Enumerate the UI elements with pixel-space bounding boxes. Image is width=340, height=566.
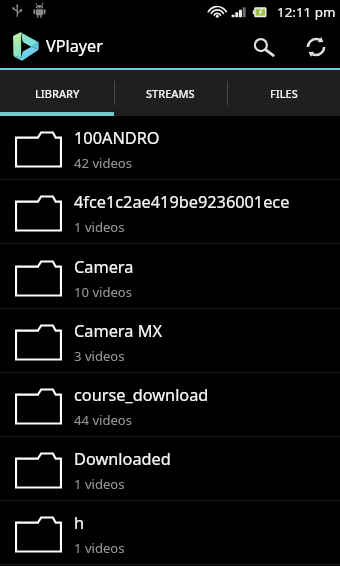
staticText: 3 videos bbox=[74, 347, 125, 365]
button[interactable]: course_download bbox=[0, 373, 340, 437]
staticText: 1 videos bbox=[74, 475, 125, 493]
staticText: VPlayer bbox=[46, 35, 103, 57]
button[interactable]: h bbox=[0, 501, 340, 565]
button[interactable]: 4fce1c2ae419be9236001ece bbox=[0, 180, 340, 244]
button[interactable]: LIBRARY bbox=[0, 70, 114, 116]
staticText: 1 videos bbox=[74, 539, 125, 557]
button[interactable]: Camera MX bbox=[0, 309, 340, 373]
staticText: LIBRARY bbox=[35, 86, 80, 101]
staticText: 44 videos bbox=[74, 411, 133, 429]
staticText: h bbox=[74, 512, 85, 534]
button[interactable]: STREAMS bbox=[114, 70, 227, 116]
staticText: Downloaded bbox=[74, 448, 171, 470]
button[interactable]: Downloaded bbox=[0, 437, 340, 501]
staticText: STREAMS bbox=[146, 86, 195, 101]
button[interactable]: Search bbox=[236, 23, 292, 68]
button[interactable]: Camera bbox=[0, 244, 340, 309]
button[interactable]: 100ANDRO bbox=[0, 116, 340, 180]
staticText: FILES bbox=[270, 86, 298, 101]
staticText: 1 videos bbox=[74, 218, 125, 236]
staticText: 10 videos bbox=[74, 283, 133, 301]
staticText: 4fce1c2ae419be9236001ece bbox=[74, 191, 290, 213]
staticText: course_download bbox=[74, 384, 209, 406]
staticText: 100ANDRO bbox=[74, 127, 160, 149]
staticText: Camera MX bbox=[74, 320, 162, 342]
button[interactable]: FILES bbox=[227, 70, 340, 116]
staticText: Camera bbox=[74, 256, 134, 278]
staticText: 42 videos bbox=[74, 154, 133, 172]
button[interactable]: Refresh bbox=[292, 23, 340, 68]
staticText: 12:11 pm bbox=[277, 3, 336, 21]
